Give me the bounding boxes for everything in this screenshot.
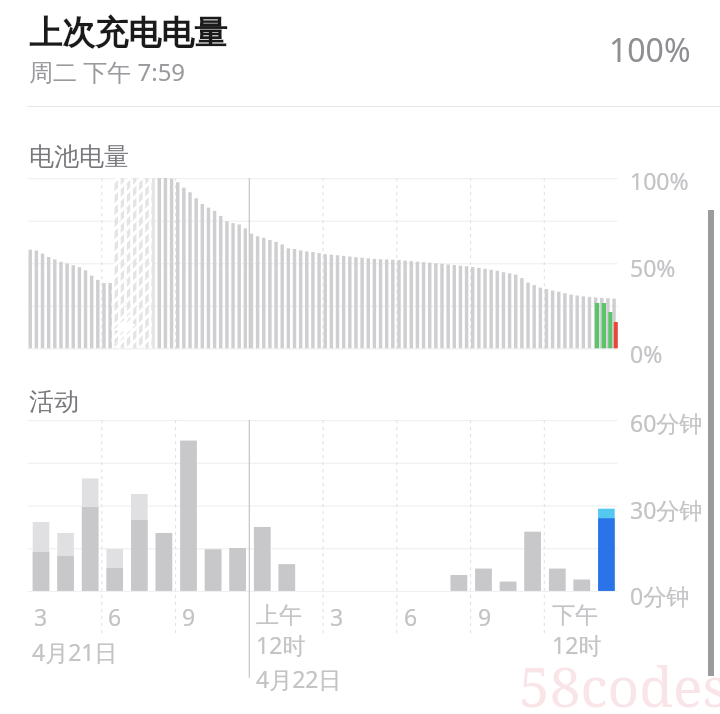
staticText: 4月22日 — [256, 663, 342, 694]
staticText: 3 — [330, 601, 344, 632]
button[interactable]: 活动图表 — [0, 370, 720, 598]
staticText: 100% — [630, 165, 689, 196]
staticText: 下午 — [552, 601, 598, 630]
button[interactable]: 电池电量图表 — [0, 120, 720, 365]
staticText: 9 — [478, 601, 492, 632]
staticText: 12时 — [552, 629, 602, 660]
staticText: 0% — [630, 338, 663, 369]
button[interactable]: 上次充电电量 — [0, 0, 720, 106]
staticText: 周二 下午 7:59 — [29, 55, 186, 88]
staticText: 4月21日 — [32, 636, 118, 667]
staticText: 50% — [630, 252, 676, 283]
staticText: 30分钟 — [630, 494, 703, 525]
staticText: 活动 — [29, 386, 79, 417]
staticText: 100% — [609, 28, 691, 72]
staticText: 上次充电电量 — [29, 12, 227, 54]
staticText: 6 — [108, 601, 122, 632]
staticText: 3 — [34, 601, 48, 632]
staticText: 电池电量 — [29, 141, 129, 172]
staticText: 12时 — [256, 629, 306, 660]
staticText: 0分钟 — [630, 580, 690, 611]
staticText: 9 — [182, 601, 196, 632]
staticText: 58codes — [519, 648, 720, 714]
staticText: 60分钟 — [630, 407, 703, 438]
staticText: 上午 — [256, 601, 302, 630]
staticText: 6 — [404, 601, 418, 632]
